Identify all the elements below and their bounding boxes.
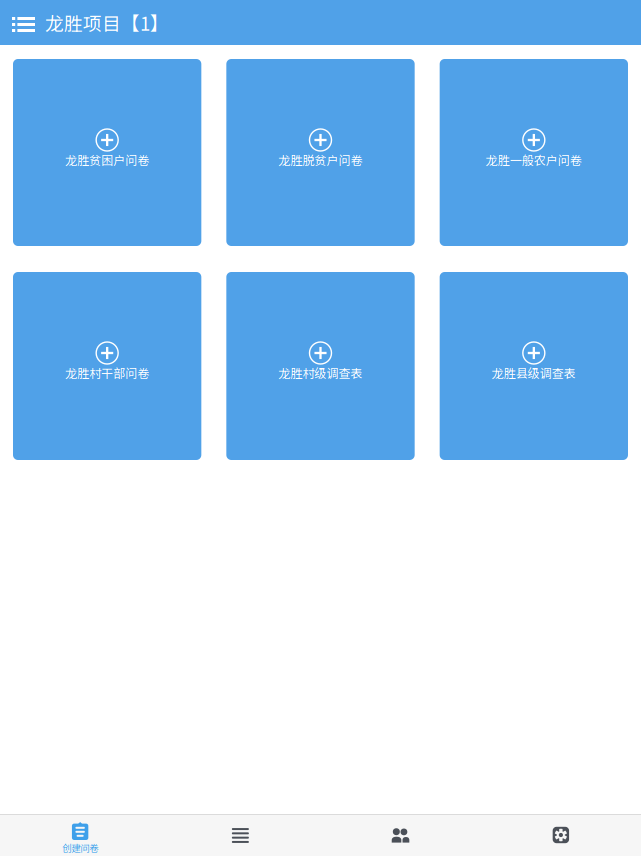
staticText: 龙胜村干部问卷 <box>65 364 149 381</box>
button[interactable]: 创建问卷 <box>0 815 160 856</box>
staticText: 龙胜贫困户问卷 <box>65 151 149 168</box>
staticText: 龙胜一般农户问卷 <box>486 151 582 168</box>
button[interactable]: 龙胜村干部问卷 <box>13 272 201 460</box>
staticText: 龙胜项目【1】 <box>45 9 169 36</box>
button[interactable]: 龙胜脱贫户问卷 <box>226 59 415 246</box>
button[interactable]: 列表 <box>160 815 320 856</box>
staticText: 龙胜村级调查表 <box>278 364 362 381</box>
staticText: 创建问卷 <box>62 841 98 854</box>
button[interactable]: 用户 <box>320 815 481 856</box>
button[interactable]: 龙胜一般农户问卷 <box>440 59 628 246</box>
button[interactable]: 龙胜贫困户问卷 <box>13 59 201 246</box>
staticText: 龙胜县级调查表 <box>492 364 576 381</box>
button[interactable]: 龙胜县级调查表 <box>440 272 628 460</box>
button[interactable]: 设置 <box>481 815 641 856</box>
button[interactable]: 龙胜村级调查表 <box>226 272 415 460</box>
button[interactable]: Menu <box>0 0 45 45</box>
staticText: 龙胜脱贫户问卷 <box>278 151 362 168</box>
